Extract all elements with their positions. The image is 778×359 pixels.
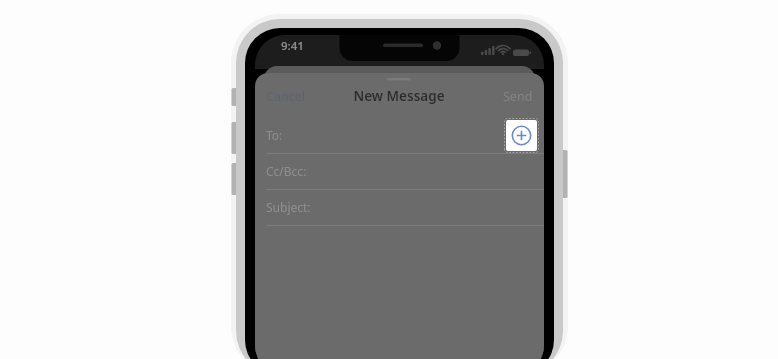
button[interactable]: Cc and Bcc field xyxy=(260,154,540,189)
button[interactable]: Subject field xyxy=(260,190,540,225)
button[interactable]: Add contact xyxy=(504,118,540,154)
button[interactable]: Send xyxy=(493,82,538,111)
